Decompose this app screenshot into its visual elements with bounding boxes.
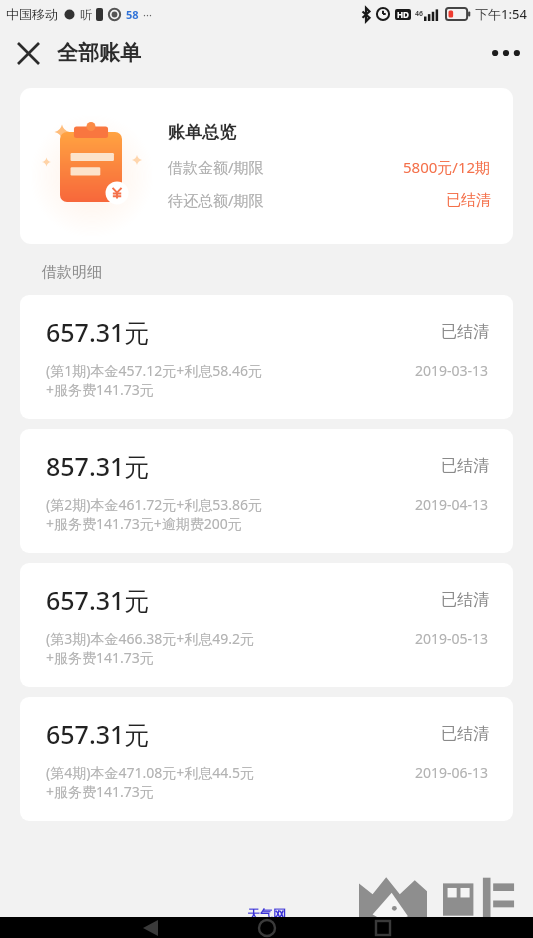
staticText: 46 — [415, 9, 424, 19]
staticText: +服务费141.73元+逾期费200元 — [46, 514, 242, 533]
staticText: 5800元/12期 — [403, 157, 491, 177]
staticText: +服务费141.73元 — [46, 782, 154, 801]
button[interactable]: Recent apps — [365, 917, 401, 938]
staticText: 58 — [126, 7, 139, 22]
staticText: 借款金额/期限 — [168, 157, 264, 177]
staticText: 已结清 — [441, 456, 489, 476]
staticText: (第3期)本金466.38元+利息49.2元 — [46, 629, 254, 648]
button[interactable]: 657.31元 — [20, 295, 513, 419]
staticText: (第4期)本金471.08元+利息44.5元 — [46, 763, 254, 782]
staticText: 2019-05-13 — [415, 629, 489, 648]
button[interactable]: 857.31元 — [20, 429, 513, 553]
staticText: 已结清 — [446, 191, 491, 210]
button[interactable]: 657.31元 — [20, 563, 513, 687]
staticText: 已结清 — [441, 724, 489, 744]
button[interactable]: Home — [249, 917, 285, 938]
staticText: 已结清 — [441, 590, 489, 610]
staticText: 2019-04-13 — [415, 495, 489, 514]
staticText: 听 — [80, 7, 92, 22]
staticText: HD — [397, 9, 409, 20]
staticText: 下午1:54 — [475, 5, 527, 23]
staticText: 已结清 — [441, 322, 489, 342]
staticText: 账单总览 — [168, 122, 236, 143]
staticText: +服务费141.73元 — [46, 648, 154, 667]
staticText: 借款明细 — [42, 263, 533, 282]
staticText: ··· — [143, 7, 152, 22]
staticText: (第2期)本金461.72元+利息53.86元 — [46, 495, 262, 514]
staticText: 657.31元 — [46, 717, 150, 751]
staticText: 天气网 — [247, 906, 286, 922]
button[interactable]: 账单总览 — [20, 88, 513, 244]
button[interactable]: More options — [482, 29, 530, 77]
staticText: 2019-06-13 — [415, 763, 489, 782]
staticText: +服务费141.73元 — [46, 380, 154, 399]
button[interactable]: Back — [132, 917, 168, 938]
button[interactable]: Close — [6, 31, 50, 75]
staticText: (第1期)本金457.12元+利息58.46元 — [46, 361, 262, 380]
staticText: 中国移动 — [6, 6, 58, 22]
staticText: 857.31元 — [46, 449, 150, 483]
staticText: 657.31元 — [46, 315, 150, 349]
staticText: 657.31元 — [46, 583, 150, 617]
button[interactable]: 657.31元 — [20, 697, 513, 821]
staticText: 2019-03-13 — [415, 361, 489, 380]
staticText: 待还总额/期限 — [168, 190, 264, 210]
staticText: 全部账单 — [57, 40, 141, 66]
